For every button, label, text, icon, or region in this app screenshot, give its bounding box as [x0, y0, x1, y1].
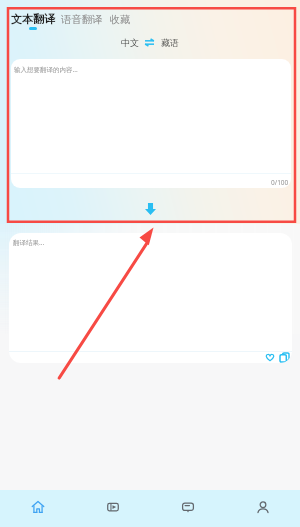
- button[interactable]: Messages: [150, 490, 225, 527]
- staticText: 文本翻译: [11, 12, 55, 26]
- button[interactable]: Swap languages: [145, 39, 154, 46]
- button[interactable]: Copy: [280, 353, 289, 362]
- button[interactable]: Videos: [75, 490, 150, 527]
- button[interactable]: 中文: [121, 37, 139, 48]
- staticText: 藏语: [161, 37, 179, 48]
- button[interactable]: Translate: [143, 202, 157, 216]
- staticText: 语音翻译: [61, 13, 103, 26]
- button[interactable]: Home: [0, 490, 75, 527]
- button[interactable]: 文本翻译: [11, 12, 55, 30]
- staticText: 输入想要翻译的内容...: [14, 65, 78, 74]
- button[interactable]: 语音翻译: [61, 13, 103, 26]
- staticText: 翻译结果...: [13, 238, 45, 247]
- staticText: 中文: [121, 37, 139, 48]
- button[interactable]: 收藏: [110, 13, 130, 26]
- button[interactable]: 藏语: [161, 37, 179, 48]
- button[interactable]: Profile: [225, 490, 300, 527]
- staticText: 收藏: [110, 13, 130, 26]
- button[interactable]: Favorite: [265, 353, 275, 362]
- staticText: 0/100: [271, 178, 289, 187]
